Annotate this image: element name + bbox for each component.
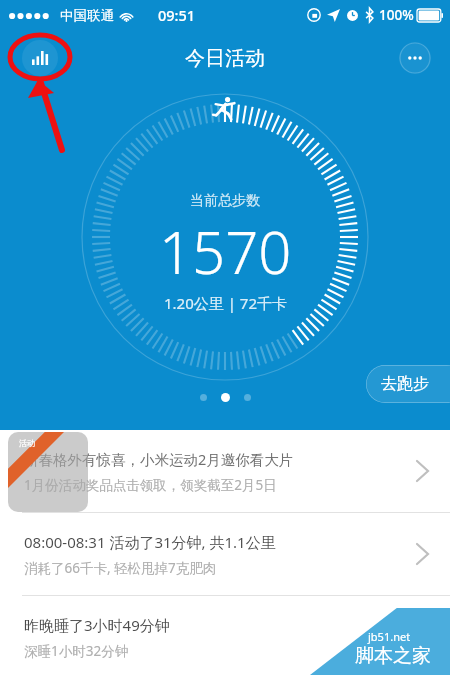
staticText: jb51.net [368,629,411,644]
staticText: 当前总步数 [190,192,260,210]
staticText: 1月份活动奖品点击领取，领奖截至2月5日 [24,476,277,494]
staticText: 中国联通 [60,7,114,24]
staticText: 新春格外有惊喜，小米运动2月邀你看大片 [24,449,294,469]
button[interactable]: 更多 [399,42,431,74]
staticText: 今日活动 [185,46,265,71]
staticText: 08:00-08:31 活动了31分钟, 共1.1公里 [24,532,276,552]
staticText: 1.20公里 | 72千卡 [164,293,287,313]
staticText: 活动 [10,438,44,448]
staticText: 09:51 [158,5,196,25]
staticText: 昨晚睡了3小时49分钟 [24,615,170,635]
staticText: 脚本之家 [355,644,431,668]
button[interactable]: 新春格外有惊喜，小米运动2月邀你看大片 [0,430,450,512]
button[interactable]: 去跑步 [366,365,450,403]
staticText: 深睡1小时32分钟 [24,642,129,660]
staticText: 1570 [159,212,292,291]
button[interactable]: 昨晚睡了3小时49分钟 [0,596,450,675]
staticText: 100% [379,6,414,24]
button[interactable]: 统计 [22,40,58,76]
staticText: 消耗了66千卡, 轻松甩掉7克肥肉 [24,559,217,577]
button[interactable]: 08:00-08:31 活动了31分钟, 共1.1公里 [0,513,450,595]
staticText: 去跑步 [381,374,429,394]
